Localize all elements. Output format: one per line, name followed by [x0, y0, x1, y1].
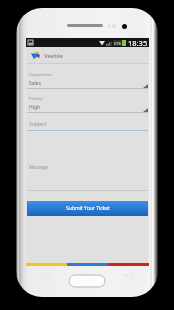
button[interactable]: Veeble — [26, 47, 149, 64]
staticText: Submit Your Ticket — [66, 205, 110, 212]
staticText: Department — [29, 72, 52, 77]
staticText: 61% — [114, 41, 122, 46]
staticText: Sales — [29, 80, 42, 87]
staticText: Message — [29, 164, 48, 170]
button[interactable]: Subject — [27, 121, 148, 131]
staticText: Subject — [29, 121, 47, 128]
staticText: High — [29, 104, 41, 111]
staticText: Veeble — [44, 52, 63, 60]
button[interactable]: Message — [27, 147, 148, 191]
button[interactable]: Sales — [27, 80, 148, 89]
button[interactable]: High — [27, 104, 148, 113]
button[interactable]: Submit Your Ticket — [27, 201, 148, 216]
staticText: 18:35 — [128, 38, 148, 47]
staticText: Priority — [29, 96, 43, 101]
